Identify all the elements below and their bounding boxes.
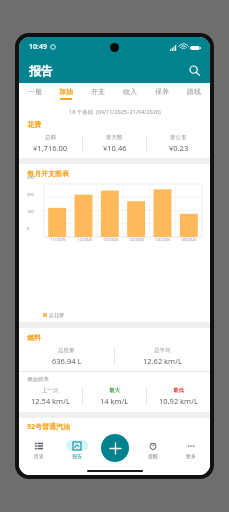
staticText: 收入 xyxy=(123,87,137,96)
staticText: 加油 xyxy=(59,87,73,96)
staticText: 一般 xyxy=(28,87,42,96)
staticText: 总容量 xyxy=(58,347,75,354)
staticText: 更多 xyxy=(186,453,196,459)
staticText: 10.92 km/L xyxy=(159,396,198,406)
button[interactable]: 历史 xyxy=(19,432,58,466)
button[interactable]: 报告 xyxy=(58,432,96,466)
staticText: 燃料 xyxy=(27,333,41,342)
staticText: ¥10.46 xyxy=(103,143,127,153)
staticText: 按天数 xyxy=(106,134,123,141)
staticText: ¥1,716.00 xyxy=(33,143,68,153)
staticText: 开支 xyxy=(91,87,105,96)
staticText: 04/2026 xyxy=(181,237,197,242)
staticText: 12.62 km/L xyxy=(143,356,182,366)
button[interactable]: 路线 xyxy=(178,83,210,103)
staticText: 0 xyxy=(27,226,30,231)
button[interactable]: 一般 xyxy=(19,83,50,103)
button[interactable]: 加油 xyxy=(50,83,82,103)
staticText: 路线 xyxy=(187,87,201,96)
button[interactable]: 保养 xyxy=(146,83,178,103)
staticText: 12/2025 xyxy=(77,237,93,242)
staticText: 92号普通汽油 xyxy=(27,422,71,432)
staticText: 历史 xyxy=(34,453,44,459)
staticText: 200 xyxy=(27,192,34,197)
button[interactable]: 提醒 xyxy=(134,432,172,466)
staticText: 上一次 xyxy=(42,387,59,394)
staticText: 每月开支图表 xyxy=(27,169,69,178)
staticText: 03/2026 xyxy=(155,237,171,242)
staticText: 燃油效率 xyxy=(27,376,49,383)
staticText: 14 km/L xyxy=(100,396,129,406)
staticText: 报告 xyxy=(29,63,53,78)
staticText: 按公里 xyxy=(170,134,187,141)
staticText: 最大 xyxy=(109,387,120,394)
staticText: 12.54 km/L xyxy=(31,396,70,406)
staticText: 总花费 xyxy=(58,436,75,443)
staticText: 01/2026 xyxy=(103,237,119,242)
staticText: 总平均 xyxy=(154,347,171,354)
staticText: 636.94 L xyxy=(52,356,82,366)
button[interactable]: 开支 xyxy=(82,83,114,103)
staticText: 300 xyxy=(27,175,34,180)
staticText: 保养 xyxy=(155,87,169,96)
button[interactable]: 更多 xyxy=(172,432,210,466)
button[interactable]: Search xyxy=(184,60,204,80)
staticText: 报告 xyxy=(72,453,82,459)
staticText: 18 个条目 (09/11/2025–21/04/2026) xyxy=(69,108,161,116)
staticText: 总花费 xyxy=(49,312,64,318)
staticText: 10:49 xyxy=(29,42,47,52)
staticText: 02/2026 xyxy=(129,237,145,242)
staticText: 总额 xyxy=(45,134,56,141)
staticText: 100 xyxy=(27,209,34,214)
staticText: 花费 xyxy=(27,120,41,129)
button[interactable]: 收入 xyxy=(114,83,146,103)
staticText: 最低 xyxy=(173,387,184,394)
staticText: 提醒 xyxy=(148,453,158,459)
button[interactable]: Add xyxy=(101,434,129,462)
staticText: 11/2025 xyxy=(50,237,66,242)
staticText: ¥0.23 xyxy=(169,143,189,153)
